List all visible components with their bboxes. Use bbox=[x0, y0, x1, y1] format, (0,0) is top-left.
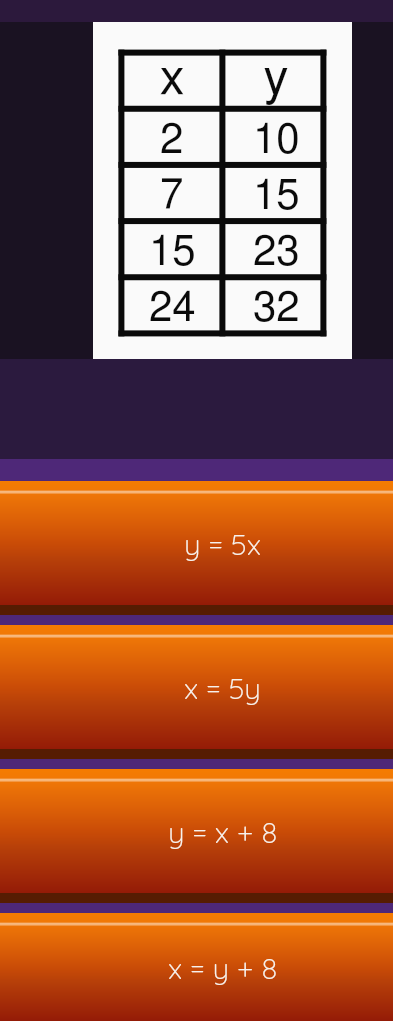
button[interactable]: y = 5x bbox=[0, 481, 393, 605]
staticText: 7 bbox=[160, 175, 184, 217]
staticText: x bbox=[160, 54, 184, 104]
staticText: 10 bbox=[253, 119, 300, 161]
staticText: 24 bbox=[149, 287, 196, 329]
staticText: x = y + 8 bbox=[168, 949, 278, 986]
button[interactable]: x = y + 8 bbox=[0, 913, 393, 1021]
staticText: x = 5y bbox=[184, 669, 261, 706]
button[interactable]: y = x + 8 bbox=[0, 769, 393, 893]
staticText: 2 bbox=[160, 119, 184, 161]
staticText: 15 bbox=[149, 231, 196, 273]
staticText: y = x + 8 bbox=[168, 813, 278, 850]
staticText: y = 5x bbox=[184, 525, 261, 562]
staticText: 23 bbox=[253, 231, 300, 273]
staticText: 15 bbox=[253, 175, 300, 217]
staticText: 32 bbox=[253, 287, 300, 329]
staticText: y bbox=[264, 54, 288, 104]
button[interactable]: x = 5y bbox=[0, 625, 393, 749]
